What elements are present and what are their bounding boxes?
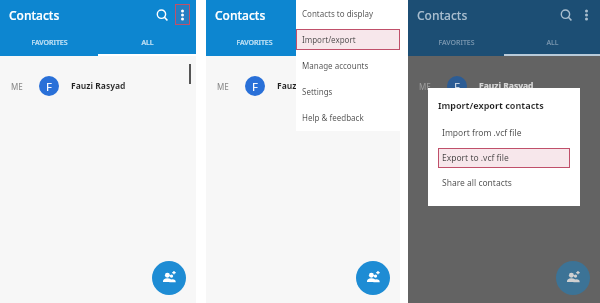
staticText: ME: [217, 81, 229, 92]
staticText: FAVORITES: [31, 38, 68, 48]
button[interactable]: Add contact: [152, 261, 186, 295]
staticText: FAVORITES: [236, 38, 273, 48]
button[interactable]: ME: [408, 64, 600, 108]
staticText: Import/export: [302, 34, 356, 45]
staticText: ALL: [345, 38, 358, 48]
staticText: Contacts to display: [302, 8, 374, 19]
button[interactable]: Settings: [296, 78, 400, 104]
staticText: ME: [11, 81, 23, 92]
button[interactable]: Add contact: [356, 261, 390, 295]
button[interactable]: Add contact: [556, 261, 590, 295]
staticText: Fauzi Rasyad: [479, 80, 534, 92]
button[interactable]: Search: [152, 5, 172, 25]
staticText: Contacts: [417, 7, 468, 23]
button[interactable]: Search: [356, 5, 376, 25]
button[interactable]: More options: [579, 4, 594, 25]
button[interactable]: Import from .vcf file: [438, 123, 570, 143]
staticText: Share all contacts: [442, 177, 512, 189]
button[interactable]: More options: [175, 4, 190, 25]
button[interactable]: Search: [556, 5, 576, 25]
staticText: Fauzi Rasyad: [71, 80, 126, 92]
staticText: F: [46, 79, 52, 94]
staticText: Help & feedback: [302, 112, 364, 123]
button[interactable]: ME: [0, 64, 196, 108]
staticText: F: [454, 79, 460, 94]
button[interactable]: ALL: [504, 29, 600, 56]
button[interactable]: Export to .vcf file: [438, 148, 570, 168]
staticText: Contacts: [9, 7, 60, 23]
button[interactable]: FAVORITES: [408, 29, 504, 56]
button[interactable]: Contacts to display: [296, 0, 400, 26]
staticText: FAVORITES: [438, 38, 475, 48]
button[interactable]: Import/export: [296, 26, 400, 52]
staticText: Import/export contacts: [438, 99, 544, 111]
staticText: ALL: [141, 38, 154, 48]
staticText: Export to .vcf file: [442, 152, 509, 164]
staticText: Contacts: [215, 7, 266, 23]
button[interactable]: Help & feedback: [296, 104, 400, 130]
staticText: Fauzi Rasyad: [277, 80, 332, 92]
button[interactable]: ALL: [303, 29, 400, 56]
staticText: ME: [419, 81, 431, 92]
staticText: Import from .vcf file: [442, 127, 522, 139]
staticText: Manage accounts: [302, 60, 369, 71]
button[interactable]: Share all contacts: [438, 173, 570, 193]
button[interactable]: FAVORITES: [206, 29, 303, 56]
button[interactable]: FAVORITES: [0, 29, 98, 56]
staticText: ALL: [546, 38, 559, 48]
button[interactable]: ME: [206, 64, 400, 108]
staticText: Settings: [302, 86, 333, 97]
button[interactable]: Manage accounts: [296, 52, 400, 78]
button[interactable]: ALL: [98, 29, 196, 56]
staticText: F: [252, 79, 258, 94]
